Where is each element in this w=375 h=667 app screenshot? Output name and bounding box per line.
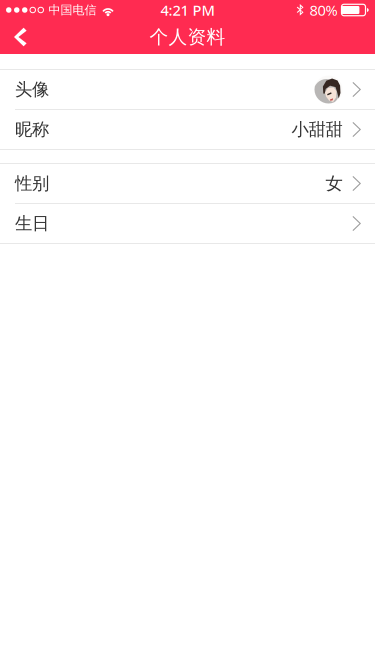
staticText: 个人资料 <box>149 25 225 48</box>
button[interactable]: 头像 <box>0 70 375 109</box>
staticText: 80% <box>309 0 337 20</box>
staticText: 4:21 PM <box>160 0 214 20</box>
staticText: 中国电信 <box>48 3 96 17</box>
button[interactable]: 生日 <box>0 204 375 243</box>
staticText: 小甜甜 <box>291 119 342 140</box>
staticText: 性别 <box>15 173 49 194</box>
staticText: 女 <box>325 173 342 194</box>
staticText: 头像 <box>15 79 49 100</box>
button[interactable]: Back <box>0 20 44 54</box>
staticText: 昵称 <box>15 119 49 140</box>
button[interactable]: 性别 <box>0 164 375 203</box>
button[interactable]: 昵称 <box>0 110 375 149</box>
staticText: 生日 <box>15 213 49 234</box>
